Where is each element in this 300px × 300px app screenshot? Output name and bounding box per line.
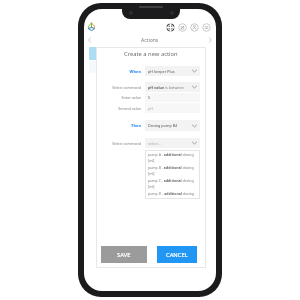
button[interactable]: Menu — [202, 23, 211, 32]
staticText: Enter value — [121, 95, 141, 100]
button[interactable]: pump B - additional dosing [ml] — [148, 165, 200, 178]
button[interactable]: Dosing pump B4 — [145, 120, 200, 131]
staticText: Select command — [112, 141, 141, 146]
staticText: Second value — [118, 106, 141, 111]
button[interactable]: pH keeper Plus — [145, 66, 200, 76]
staticText: pH keeper Plus — [148, 69, 175, 74]
button[interactable]: SAVE — [101, 246, 147, 263]
button[interactable]: Back — [84, 34, 94, 46]
button[interactable]: pump C - additional dosing [ml] — [148, 178, 200, 191]
staticText: select... — [148, 141, 161, 146]
button[interactable]: pump D - additional dosing [ml] — [148, 191, 200, 199]
button[interactable]: 5 — [145, 93, 200, 102]
staticText: pump D - additional dosing [ml] — [148, 191, 200, 199]
button[interactable]: pump A - additional dosing [ml] — [148, 152, 200, 165]
staticText: SAVE — [117, 251, 131, 259]
button[interactable]: pH value is between — [145, 82, 200, 92]
other: App logo — [87, 22, 96, 31]
staticText: Select command — [112, 85, 141, 90]
button[interactable]: CANCEL — [157, 246, 197, 263]
staticText: pH value is between — [148, 85, 184, 90]
staticText: Then — [131, 123, 141, 128]
button[interactable]: pH — [145, 103, 200, 113]
button[interactable]: Notifications — [178, 23, 187, 32]
staticText: When — [129, 69, 141, 74]
staticText: pump A - additional dosing [ml] — [148, 152, 200, 163]
button[interactable]: Profile — [190, 23, 199, 32]
button[interactable]: select... — [145, 138, 200, 148]
button[interactable]: Forward — [205, 34, 215, 46]
staticText: pH — [148, 106, 154, 111]
staticText: pump B - additional dosing [ml] — [148, 165, 200, 176]
staticText: pump C - additional dosing [ml] — [148, 178, 200, 189]
staticText: Create a new action — [124, 50, 178, 58]
staticText: Dosing pump B4 — [148, 123, 178, 128]
staticText: CANCEL — [166, 251, 188, 259]
staticText: 5 — [148, 95, 151, 100]
staticText: Actions — [141, 37, 159, 44]
button[interactable]: Language — [166, 23, 175, 32]
